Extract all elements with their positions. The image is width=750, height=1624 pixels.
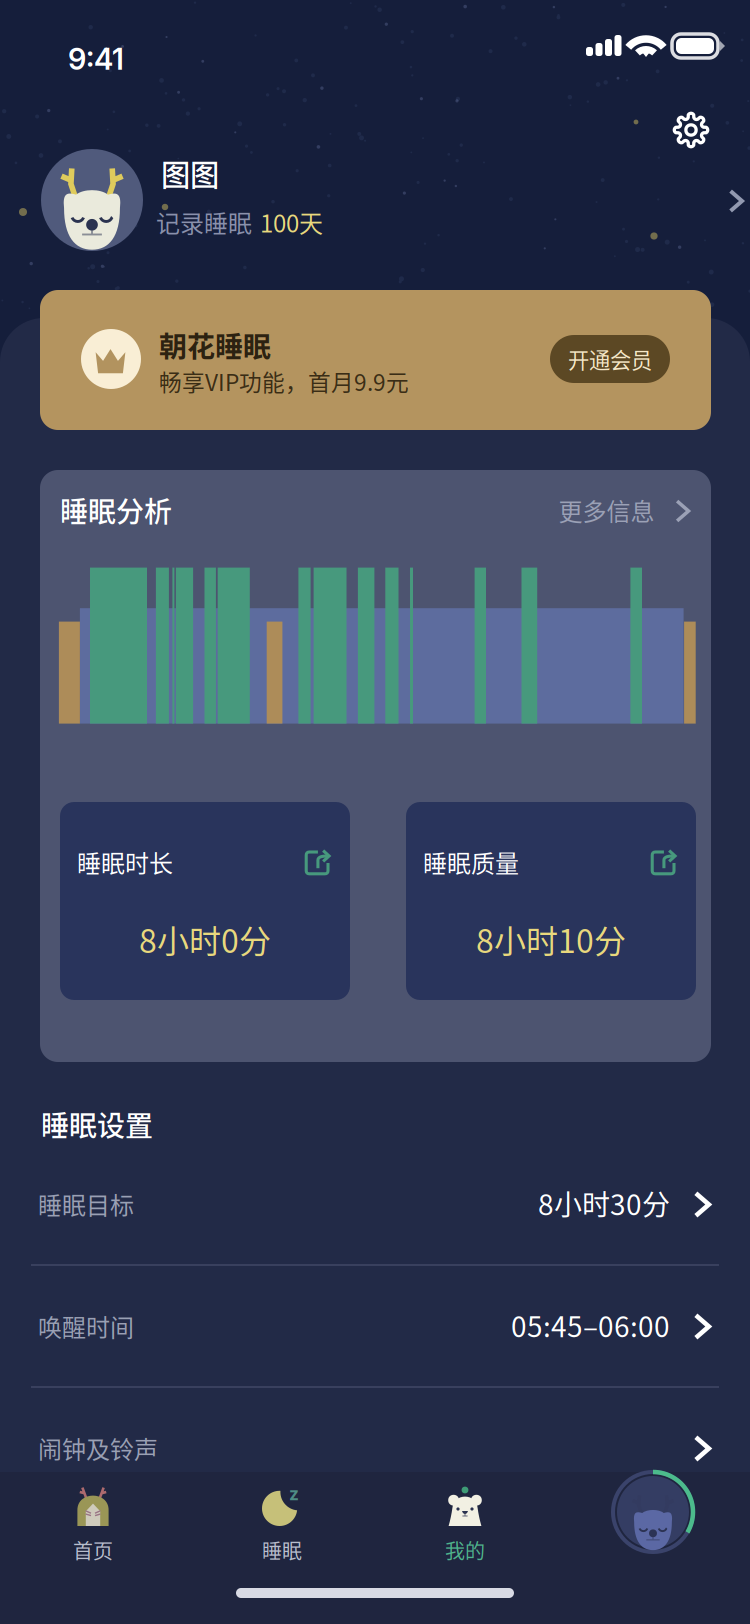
button[interactable]: 我的	[390, 1472, 540, 1566]
staticText: 9:41	[68, 41, 124, 77]
button[interactable]: 睡眠目标	[0, 1144, 750, 1266]
button[interactable]: 开通会员	[550, 335, 670, 383]
button[interactable]: 唤醒时间	[0, 1266, 750, 1388]
staticText: 睡眠目标	[38, 1187, 134, 1221]
staticText: 闹钟及铃声	[38, 1431, 158, 1465]
staticText: 8小时10分	[476, 916, 626, 962]
staticText: 图图	[161, 152, 219, 194]
staticText: 05:45–06:00	[511, 1305, 670, 1345]
staticText: 睡眠	[262, 1535, 302, 1564]
staticText: 朝花睡眠	[159, 325, 271, 365]
staticText: 睡眠分析	[60, 490, 172, 530]
staticText: 畅享VIP功能，首月9.9元	[159, 365, 409, 397]
staticText: 8小时0分	[139, 916, 271, 962]
button[interactable]: Settings	[660, 99, 722, 161]
staticText: 睡眠质量	[423, 845, 519, 879]
staticText: 100天	[260, 205, 323, 239]
staticText: 首页	[73, 1535, 113, 1564]
staticText: 记录睡眠	[156, 205, 252, 239]
staticText: 更多信息	[558, 493, 654, 527]
button[interactable]: 睡眠质量	[406, 802, 696, 1000]
staticText: 开通会员	[568, 344, 652, 374]
staticText: z	[289, 1483, 299, 1504]
button[interactable]: Sleep tracker	[611, 1470, 695, 1554]
staticText: 唤醒时间	[38, 1309, 134, 1343]
button[interactable]: 闹钟及铃声	[0, 1388, 750, 1510]
button[interactable]: 睡眠时长	[60, 802, 350, 1000]
button[interactable]: 更多信息	[539, 482, 711, 538]
button[interactable]: z	[207, 1472, 357, 1566]
staticText: 8小时30分	[538, 1183, 670, 1223]
staticText: 我的	[445, 1535, 485, 1564]
button[interactable]: 图图	[41, 149, 750, 265]
button[interactable]: 首页	[18, 1472, 168, 1566]
staticText: 睡眠设置	[41, 1104, 153, 1144]
staticText: 睡眠时长	[77, 845, 173, 879]
